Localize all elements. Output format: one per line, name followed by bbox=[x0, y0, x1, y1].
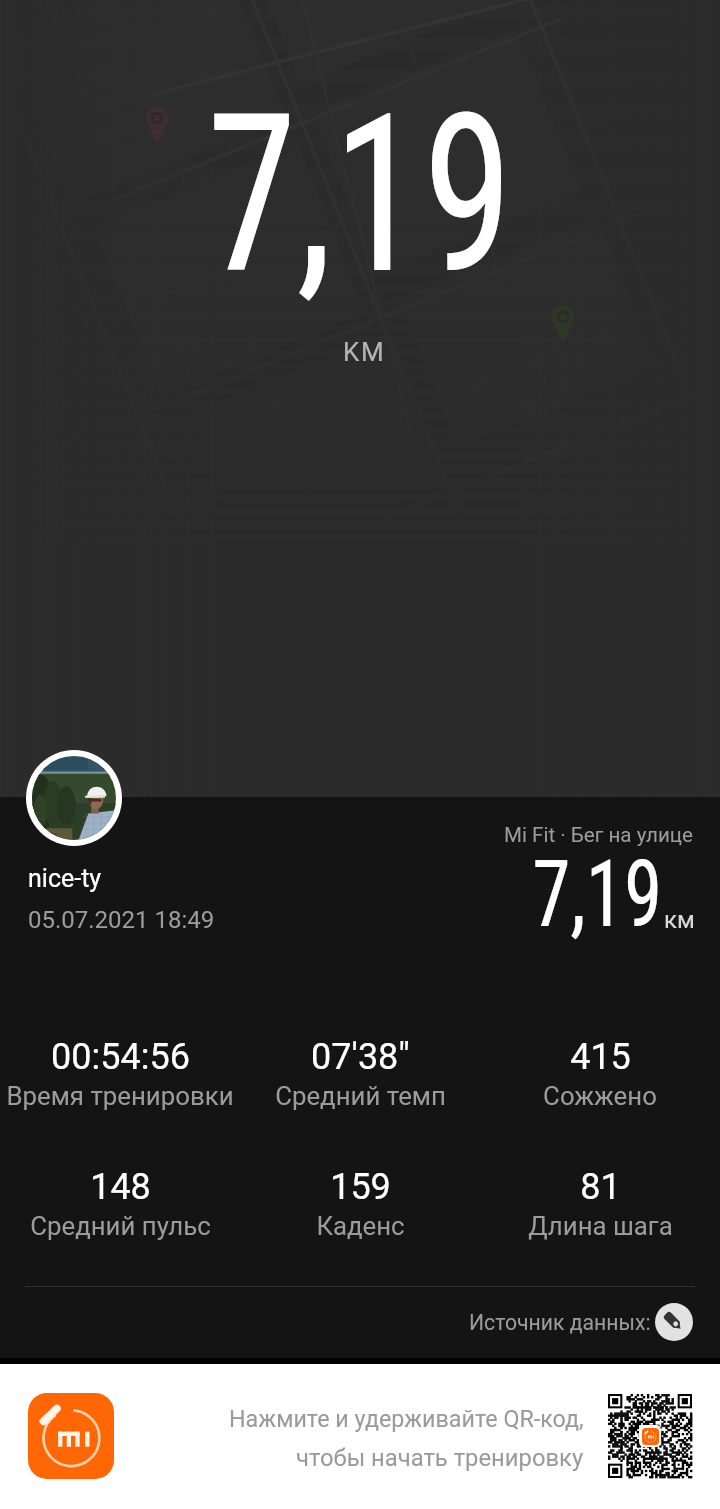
button[interactable]: 415 bbox=[480, 1036, 720, 1111]
staticText: 7,19 bbox=[532, 840, 663, 949]
staticText: Длина шага bbox=[528, 1211, 673, 1241]
button[interactable]: 159 bbox=[240, 1166, 480, 1241]
staticText: Mi Fit · Бег на улице bbox=[504, 823, 693, 847]
button[interactable]: 00:54:56 bbox=[0, 1036, 240, 1111]
button[interactable]: 07'38" bbox=[240, 1036, 480, 1111]
staticText: 148 bbox=[90, 1166, 151, 1208]
button[interactable]: Источник данных bbox=[655, 1303, 693, 1341]
staticText: км bbox=[664, 906, 695, 934]
staticText: Каденс bbox=[316, 1211, 405, 1241]
button[interactable]: Mi Fit bbox=[28, 1393, 114, 1479]
staticText: Время тренировки bbox=[6, 1081, 234, 1111]
staticText: 159 bbox=[330, 1166, 391, 1208]
staticText: чтобы начать тренировку bbox=[296, 1444, 584, 1472]
staticText: 415 bbox=[570, 1036, 631, 1078]
staticText: 07'38" bbox=[311, 1036, 410, 1078]
staticText: KM bbox=[343, 337, 386, 367]
staticText: 7,19 bbox=[207, 67, 513, 324]
staticText: Сожжено bbox=[543, 1081, 657, 1111]
button[interactable]: 81 bbox=[480, 1166, 720, 1241]
staticText: 81 bbox=[580, 1166, 621, 1208]
button[interactable]: Профиль nice-ty bbox=[26, 750, 122, 846]
staticText: 05.07.2021 18:49 bbox=[28, 906, 215, 934]
button[interactable]: QR-код тренировки bbox=[608, 1394, 692, 1478]
button[interactable]: 148 bbox=[0, 1166, 240, 1241]
staticText: nice-ty bbox=[28, 864, 102, 893]
staticText: Средний темп bbox=[275, 1081, 446, 1111]
staticText: Нажмите и удерживайте QR-код, bbox=[229, 1405, 584, 1432]
staticText: Средний пульс bbox=[30, 1211, 211, 1241]
staticText: Источник данных: bbox=[469, 1310, 651, 1335]
staticText: 00:54:56 bbox=[51, 1036, 190, 1078]
